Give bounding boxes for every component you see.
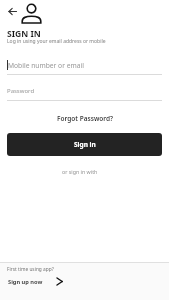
staticText: Sign in (74, 140, 96, 149)
button[interactable]: Sign in (7, 133, 162, 156)
button[interactable]: Password (7, 84, 162, 101)
staticText: or sign in with (62, 168, 98, 175)
staticText: Password (7, 87, 35, 95)
staticText: Log in using your email address or mobil… (7, 38, 106, 45)
staticText: Mobile number or email (8, 61, 84, 70)
staticText: SIGN IN (7, 28, 41, 40)
button[interactable]: Sign up now (8, 277, 64, 286)
button[interactable] (4, 4, 22, 20)
button[interactable]: Forgot Password? (55, 112, 115, 124)
staticText: Forgot Password? (57, 114, 114, 123)
staticText: First time using app? (7, 266, 54, 273)
staticText: Sign up now (8, 278, 43, 286)
button[interactable]: Mobile number or email (7, 57, 162, 75)
